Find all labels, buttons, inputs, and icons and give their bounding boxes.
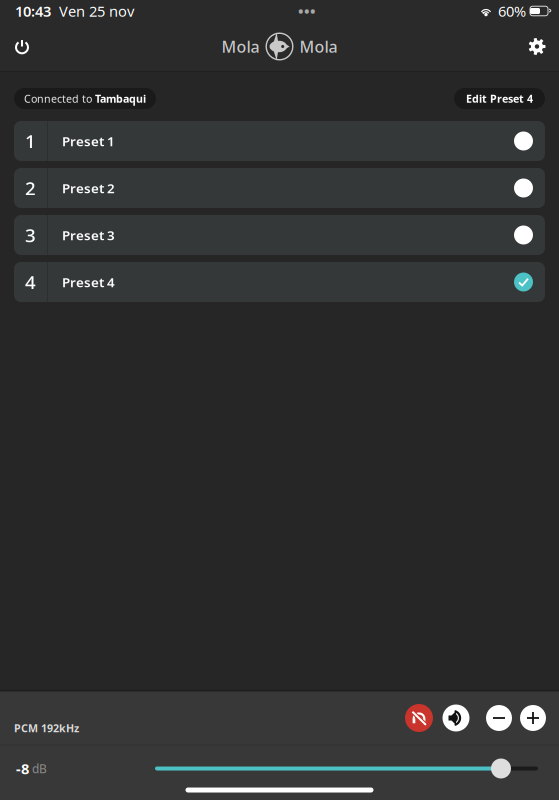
button[interactable]: Edit Preset 4 <box>454 88 545 109</box>
staticText: Edit Preset 4 <box>466 91 533 106</box>
button[interactable]: Speaker <box>440 702 472 734</box>
staticText: Preset 3 <box>62 226 115 244</box>
staticText: Tambaqui <box>95 91 146 106</box>
button[interactable]: 1 <box>14 121 545 161</box>
staticText: Preset 1 <box>62 132 115 150</box>
button[interactable]: 2 <box>14 168 545 208</box>
button[interactable]: Mute headphones <box>403 702 435 734</box>
staticText: Preset 4 <box>62 273 115 291</box>
button[interactable]: Settings <box>515 24 559 68</box>
staticText: Ven 25 nov <box>51 1 134 21</box>
button[interactable]: Volume up <box>518 703 548 733</box>
staticText: 60% <box>498 1 526 21</box>
staticText: 3 <box>25 223 36 247</box>
staticText: Mola <box>299 36 337 57</box>
staticText: 1 <box>25 129 36 153</box>
button[interactable]: 4 <box>14 262 545 302</box>
staticText: ••• <box>298 1 316 21</box>
staticText: Preset 2 <box>62 179 115 197</box>
button[interactable]: 3 <box>14 215 545 255</box>
button[interactable]: Volume down <box>484 703 514 733</box>
staticText: -8 <box>16 759 29 778</box>
staticText: 10:43 <box>15 1 51 21</box>
staticText: Connected to <box>24 91 95 106</box>
staticText: 4 <box>25 270 36 294</box>
staticText: Mola <box>221 36 259 57</box>
button[interactable]: Connected to <box>14 88 156 109</box>
staticText: PCM 192kHz <box>14 721 79 735</box>
staticText: 2 <box>25 176 36 200</box>
staticText: dB <box>29 760 47 776</box>
button[interactable]: Power <box>0 24 44 68</box>
